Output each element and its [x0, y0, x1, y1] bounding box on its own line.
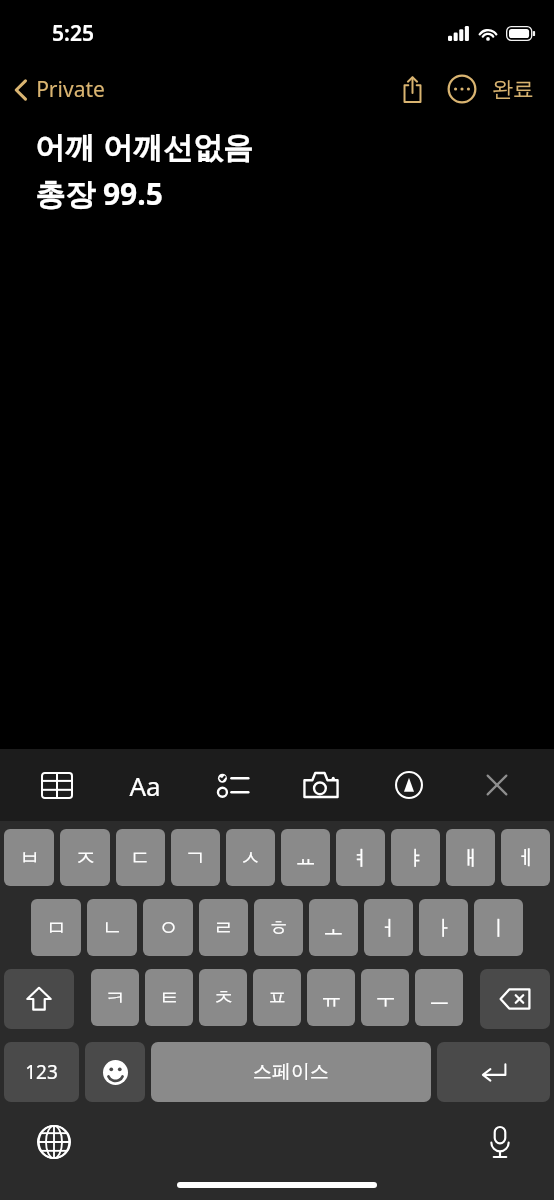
staticText: ㅊ: [213, 985, 234, 1011]
staticText: Aa: [129, 768, 161, 803]
button[interactable]: ㄷ: [116, 829, 165, 886]
staticText: ㅋ: [105, 985, 126, 1011]
button[interactable]: ㅎ: [254, 899, 303, 956]
staticText: ㅌ: [159, 985, 180, 1011]
button[interactable]: Return: [437, 1042, 550, 1102]
staticText: ㅎ: [268, 915, 289, 941]
staticText: ㅈ: [75, 845, 96, 871]
button[interactable]: Close keyboard: [466, 755, 528, 815]
button[interactable]: ㅕ: [336, 829, 385, 886]
button[interactable]: ㅣ: [474, 899, 523, 956]
button[interactable]: ㄴ: [87, 899, 137, 956]
button[interactable]: Checklist: [202, 755, 264, 815]
button[interactable]: Private: [0, 69, 115, 110]
button[interactable]: Emoji: [85, 1042, 145, 1102]
staticText: ㅂ: [19, 845, 40, 871]
button[interactable]: ㅓ: [364, 899, 413, 956]
button[interactable]: Share: [390, 67, 434, 111]
staticText: 5:25: [52, 19, 94, 48]
button[interactable]: ㅈ: [60, 829, 110, 886]
button[interactable]: 스페이스: [151, 1042, 431, 1102]
button[interactable]: ㅁ: [31, 899, 81, 956]
staticText: ㅣ: [488, 915, 509, 941]
button[interactable]: ㅐ: [446, 829, 495, 886]
button[interactable]: 완료: [486, 68, 540, 110]
button[interactable]: ㅗ: [309, 899, 358, 956]
staticText: ㅓ: [378, 915, 399, 941]
button[interactable]: ㅇ: [143, 899, 193, 956]
button[interactable]: ㅅ: [226, 829, 275, 886]
staticText: ㅡ: [429, 985, 450, 1011]
staticText: ㅠ: [321, 985, 342, 1011]
staticText: 스페이스: [253, 1060, 329, 1084]
button[interactable]: Text format: [114, 755, 176, 815]
button[interactable]: Switch keyboard: [30, 1118, 78, 1166]
button[interactable]: ㅏ: [419, 899, 468, 956]
staticText: ㅔ: [515, 845, 536, 871]
button[interactable]: Dictation: [476, 1118, 524, 1166]
staticText: 어깨 어깨선없음: [35, 126, 253, 167]
staticText: ㅐ: [460, 845, 481, 871]
staticText: ㄹ: [213, 915, 234, 941]
button[interactable]: ㄱ: [171, 829, 220, 886]
button[interactable]: Markup: [378, 755, 440, 815]
staticText: ㄱ: [185, 845, 206, 871]
staticText: ㅇ: [158, 915, 179, 941]
button[interactable]: ㅔ: [501, 829, 550, 886]
button[interactable]: ㅡ: [415, 969, 463, 1026]
staticText: 123: [25, 1059, 58, 1085]
staticText: ㄴ: [102, 915, 123, 941]
button[interactable]: More options: [440, 67, 484, 111]
button[interactable]: ㅍ: [253, 969, 301, 1026]
staticText: ㅏ: [433, 915, 454, 941]
staticText: ㅁ: [46, 915, 67, 941]
button[interactable]: Camera: [290, 755, 352, 815]
staticText: ㄷ: [130, 845, 151, 871]
button[interactable]: Backspace: [480, 969, 550, 1029]
button[interactable]: ㅛ: [281, 829, 330, 886]
staticText: ㅕ: [350, 845, 371, 871]
staticText: ㅑ: [405, 845, 426, 871]
staticText: Private: [36, 75, 105, 104]
staticText: 총장 99.5: [35, 173, 163, 214]
staticText: ㅍ: [267, 985, 288, 1011]
button[interactable]: ㅊ: [199, 969, 247, 1026]
button[interactable]: ㅌ: [145, 969, 193, 1026]
button[interactable]: ㄹ: [199, 899, 248, 956]
button[interactable]: ㅜ: [361, 969, 409, 1026]
staticText: 완료: [492, 76, 534, 102]
staticText: ㅅ: [240, 845, 261, 871]
staticText: ㅛ: [295, 845, 316, 871]
button[interactable]: ㅂ: [4, 829, 54, 886]
button[interactable]: Table: [26, 755, 88, 815]
staticText: ㅗ: [323, 915, 344, 941]
button[interactable]: ㅠ: [307, 969, 355, 1026]
button[interactable]: 123: [4, 1042, 79, 1102]
button[interactable]: ㅑ: [391, 829, 440, 886]
staticText: ㅜ: [375, 985, 396, 1011]
button[interactable]: ㅋ: [91, 969, 139, 1026]
button[interactable]: [4, 969, 74, 1029]
